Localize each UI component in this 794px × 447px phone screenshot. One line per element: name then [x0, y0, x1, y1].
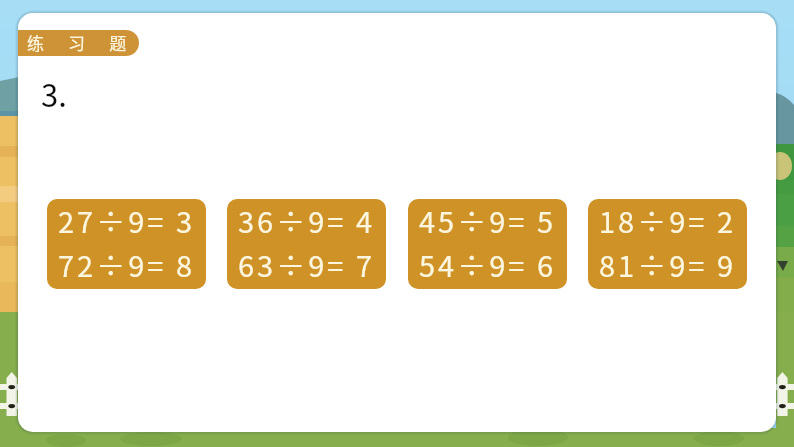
staticText: 27÷9= 3: [58, 199, 195, 241]
button[interactable]: 27÷9= 3: [47, 199, 206, 289]
staticText: 63÷9= 7: [238, 243, 375, 285]
staticText: 36÷9= 4: [238, 199, 375, 241]
button[interactable]: 练 习 题: [18, 30, 139, 56]
button[interactable]: 18÷9= 2: [588, 199, 747, 289]
staticText: 81÷9= 9: [599, 243, 736, 285]
staticText: 3.: [41, 71, 67, 116]
staticText: 54÷9= 6: [419, 243, 556, 285]
button[interactable]: 45÷9= 5: [408, 199, 567, 289]
staticText: 72÷9= 8: [58, 243, 195, 285]
staticText: 45÷9= 5: [419, 199, 556, 241]
staticText: 练 习 题: [27, 30, 132, 55]
button[interactable]: 36÷9= 4: [227, 199, 386, 289]
staticText: 18÷9= 2: [599, 199, 736, 241]
